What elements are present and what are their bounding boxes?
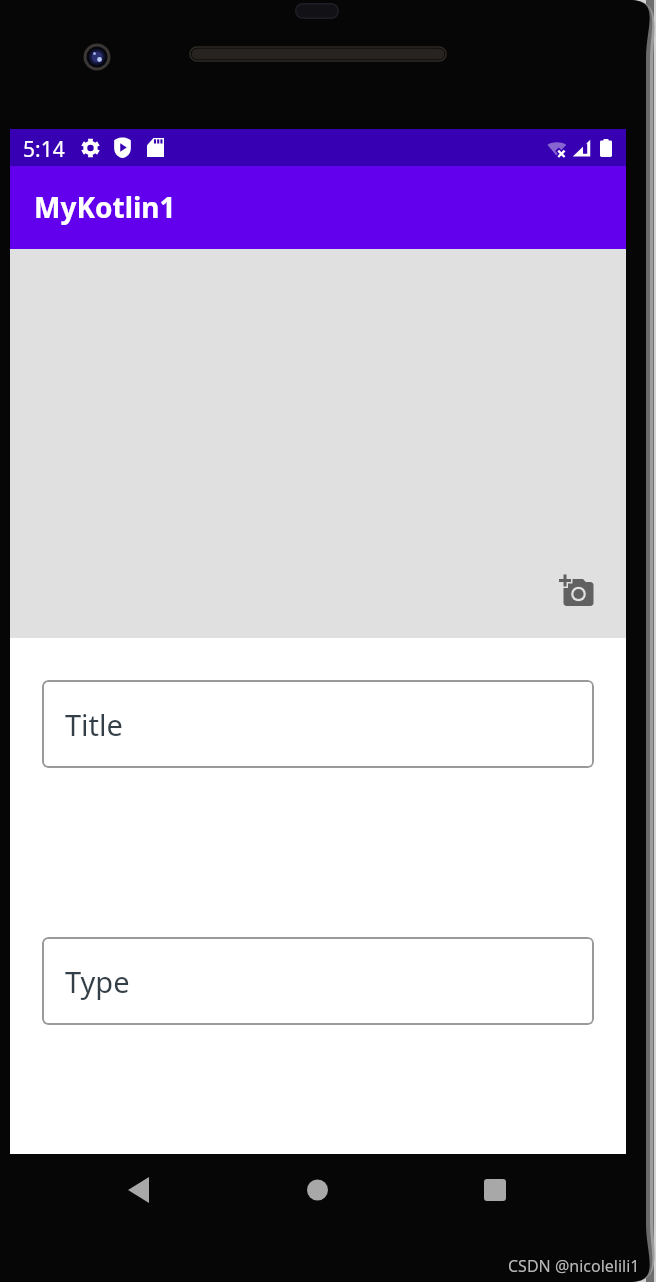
staticText: Type — [65, 962, 130, 1001]
staticText: CSDN @nicolelili1 — [508, 1255, 640, 1277]
staticText: 5:14 — [23, 135, 65, 164]
staticText: Title — [65, 705, 123, 744]
button[interactable]: Add a photo — [10, 249, 626, 638]
button[interactable]: Add a photo — [556, 570, 598, 612]
button[interactable]: Type — [42, 937, 594, 1025]
button[interactable]: Back — [10, 1154, 216, 1226]
button[interactable]: Home — [216, 1154, 421, 1226]
button[interactable]: Title — [42, 680, 594, 768]
button[interactable]: Recent apps — [421, 1154, 626, 1226]
staticText: MyKotlin1 — [34, 188, 176, 226]
